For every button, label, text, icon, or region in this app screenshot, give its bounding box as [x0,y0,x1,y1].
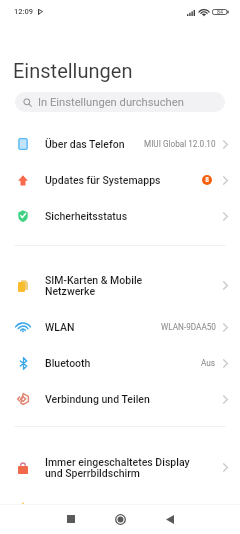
staticText: Updates für Systemapps [45,174,202,186]
staticText: WLAN-9DAA50 [161,322,216,332]
staticText: Display [45,503,223,515]
button[interactable]: Updates für Systemapps [0,162,240,198]
staticText: 8 [205,176,209,184]
staticText: Bluetooth [45,357,201,369]
button[interactable]: Home [105,504,135,534]
staticText: In Einstellungen durchsuchen [38,96,184,109]
button[interactable]: Display [0,491,240,527]
button[interactable]: Sicherheitsstatus [0,198,240,234]
button[interactable]: Bluetooth [0,345,240,381]
button[interactable]: Recent apps [56,504,86,534]
staticText: SIM-Karten & Mobile Netzwerke [45,274,223,298]
staticText: Immer eingeschaltetes Display und Sperrb… [45,456,223,480]
button[interactable]: Über das Telefon [0,126,240,162]
staticText: 84 [217,9,223,15]
staticText: Sicherheitsstatus [45,210,223,222]
button[interactable]: Verbindung und Teilen [0,381,240,417]
staticText: Einstellungen [13,59,133,82]
staticText: 12:09 [14,7,34,16]
staticText: Aus [201,358,216,368]
button[interactable]: WLAN [0,309,240,345]
button[interactable]: SIM-Karten & Mobile Netzwerke [0,262,240,309]
staticText: MIUI Global 12.0.10 [144,139,216,149]
button[interactable]: Back [155,504,185,534]
button[interactable]: In Einstellungen durchsuchen [15,92,225,112]
button[interactable]: Immer eingeschaltetes Display und Sperrb… [0,444,240,491]
staticText: Über das Telefon [45,138,144,150]
staticText: Verbindung und Teilen [45,393,223,405]
staticText: WLAN [45,321,161,333]
